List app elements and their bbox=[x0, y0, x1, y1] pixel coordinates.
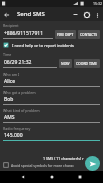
staticText: Time bbox=[3, 52, 12, 57]
button[interactable]: NOW bbox=[59, 59, 72, 68]
button[interactable]: +886/911517911 bbox=[3, 29, 53, 39]
button[interactable]: Back bbox=[18, 172, 28, 182]
staticText: 06/29 21:32 bbox=[4, 59, 32, 66]
button[interactable]: FIRE DEPT bbox=[55, 30, 76, 39]
staticText: FIRE DEPT bbox=[57, 32, 74, 37]
staticText: Who got a problem bbox=[3, 90, 36, 95]
staticText: Recipient bbox=[3, 23, 19, 28]
button[interactable]: Settings bbox=[81, 9, 92, 20]
staticText: +886/911517911 bbox=[4, 30, 44, 37]
staticText: Radio frequency bbox=[3, 126, 31, 131]
button[interactable]: CONTACTS bbox=[78, 30, 100, 39]
button[interactable]: Recents bbox=[75, 172, 85, 182]
button[interactable]: Avoid special symbols for more charac bbox=[3, 162, 100, 168]
staticText: Who am I bbox=[3, 72, 20, 77]
staticText: CONTACTS bbox=[80, 32, 98, 37]
button[interactable]: COORD TIME bbox=[74, 59, 100, 68]
button[interactable]: Bob bbox=[3, 95, 100, 105]
button[interactable]: Back bbox=[0, 8, 13, 21]
button[interactable]: I need help or to report incidents bbox=[3, 42, 100, 48]
button[interactable]: AMS bbox=[3, 113, 100, 123]
button[interactable]: Home bbox=[47, 172, 57, 182]
button[interactable]: 06/29 21:32 bbox=[3, 58, 57, 68]
staticText: Avoid special symbols for more charac bbox=[11, 163, 74, 168]
button[interactable]: Minimize bbox=[70, 9, 81, 20]
staticText: What kind of problem bbox=[3, 108, 40, 113]
staticText: 145.000 bbox=[4, 132, 23, 139]
button[interactable]: 145.000 bbox=[3, 131, 100, 141]
staticText: AMS bbox=[4, 114, 15, 121]
button[interactable]: More options bbox=[92, 10, 102, 20]
staticText: NOW bbox=[61, 61, 70, 66]
staticText: Bob bbox=[4, 96, 14, 103]
staticText: 1 SMS ( 11 character(s) r bbox=[43, 156, 84, 161]
staticText: Alice bbox=[4, 78, 15, 85]
staticText: I need help or to report incidents bbox=[12, 43, 75, 48]
staticText: 15:32 bbox=[93, 1, 102, 6]
staticText: COORD TIME bbox=[76, 61, 98, 66]
staticText: Send SMS bbox=[17, 10, 45, 18]
button[interactable]: Alice bbox=[3, 77, 100, 87]
button[interactable]: Send bbox=[85, 156, 100, 171]
